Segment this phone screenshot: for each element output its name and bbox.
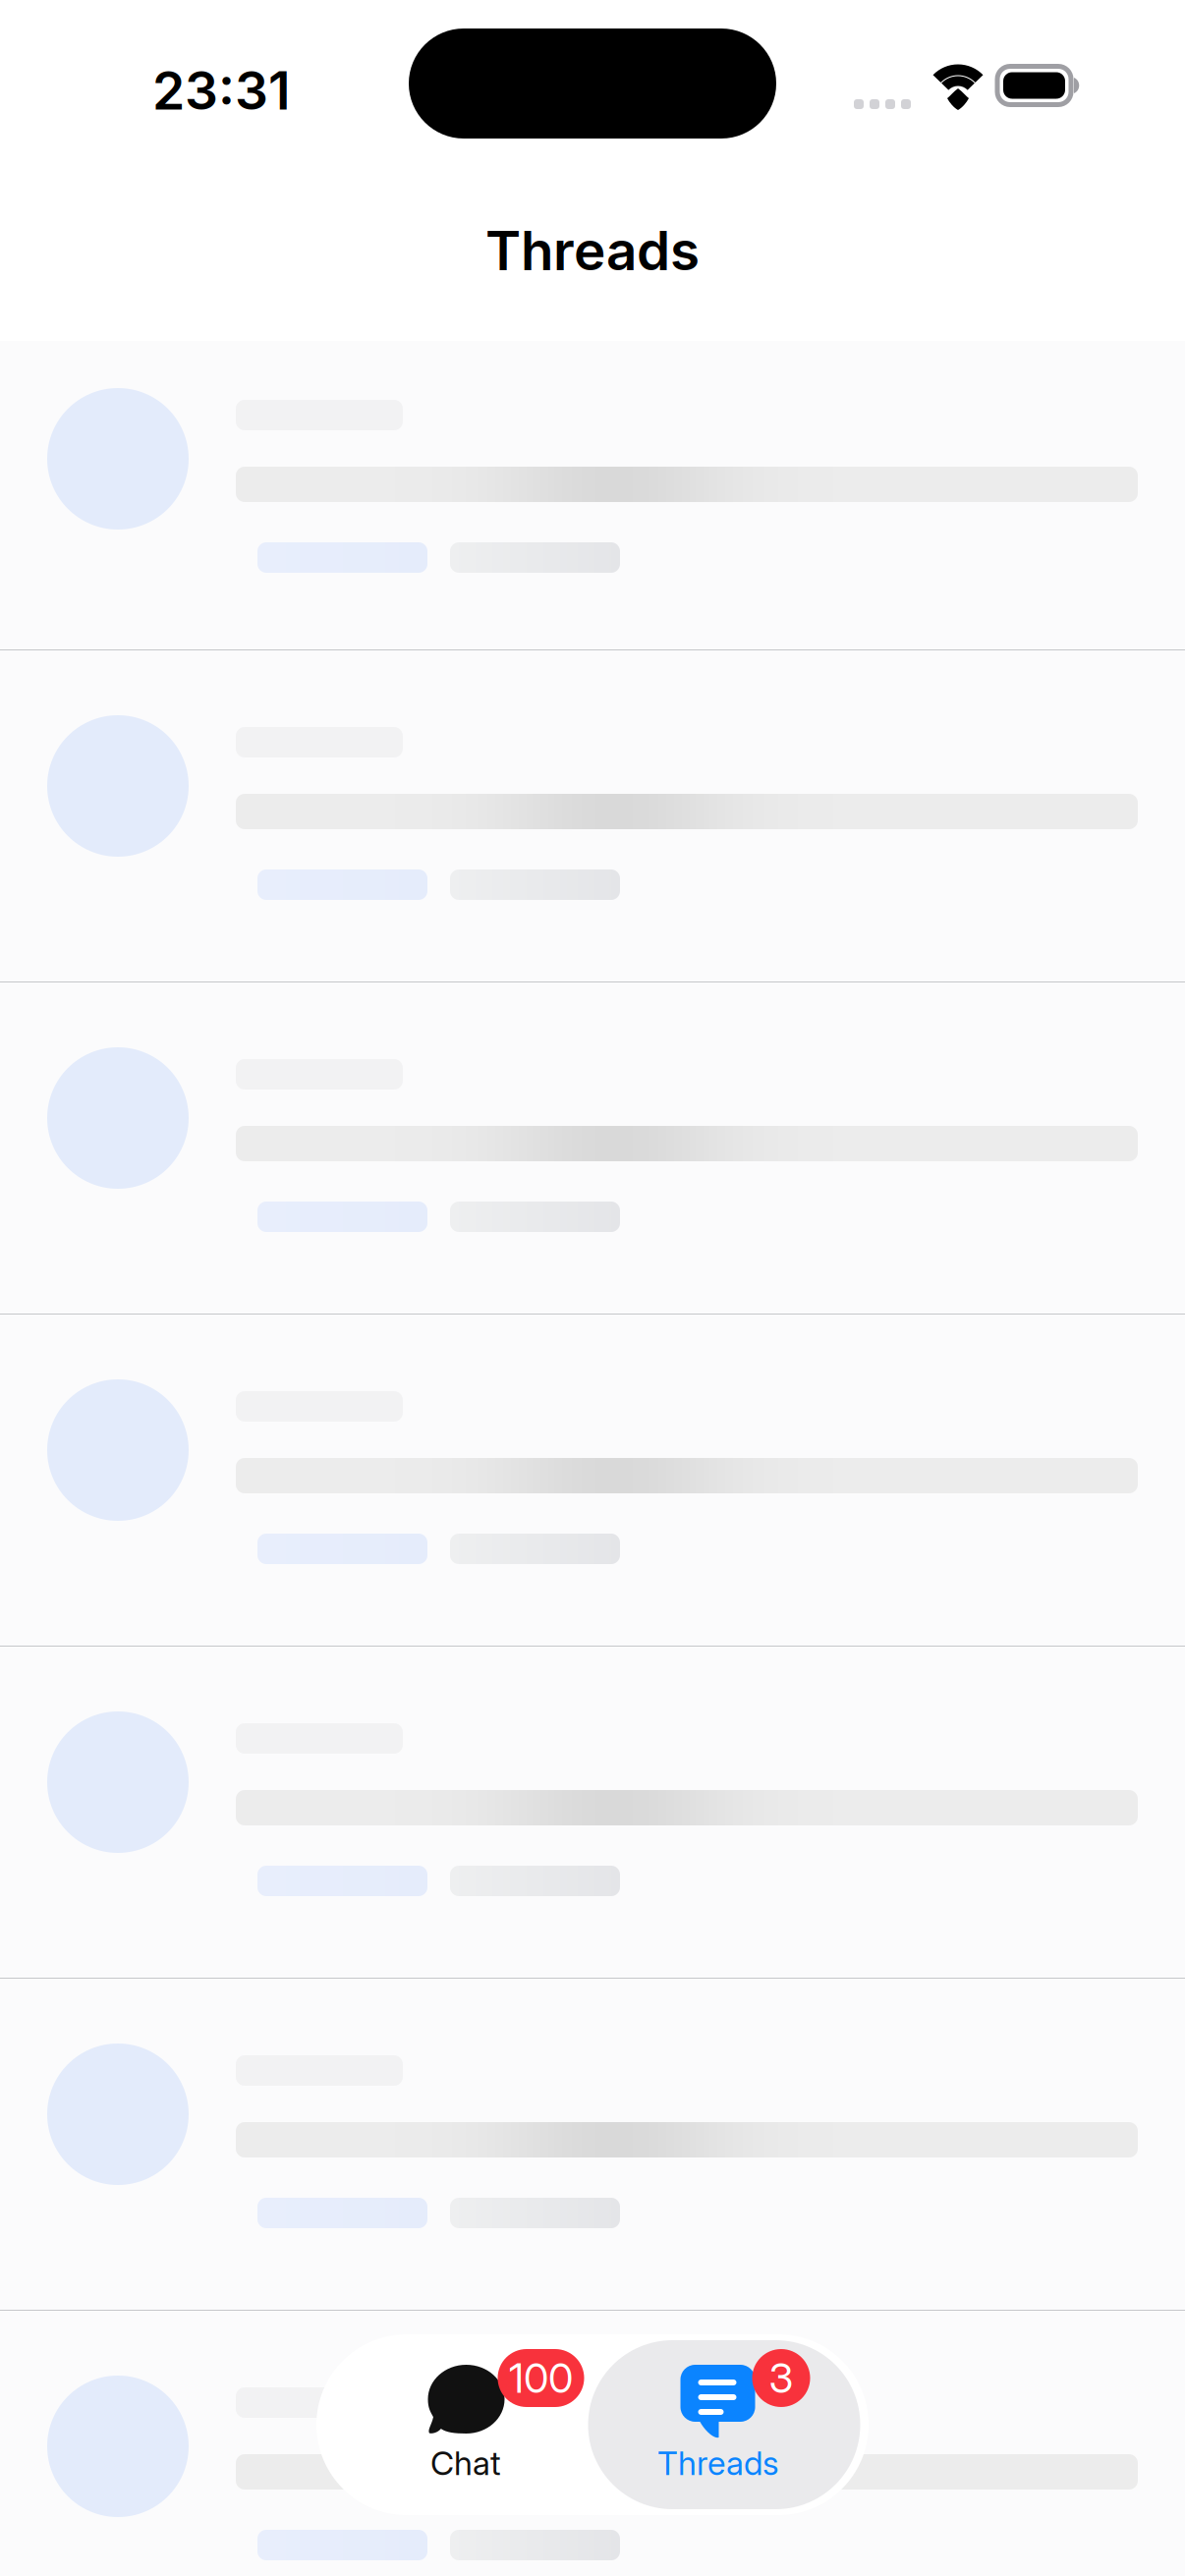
staticText: Threads	[657, 2443, 779, 2483]
button[interactable]: 100	[316, 2340, 588, 2509]
staticText: Chat	[430, 2443, 501, 2483]
button[interactable]: 3	[588, 2340, 860, 2509]
staticText: Threads	[485, 218, 700, 283]
staticText: 23:31	[152, 59, 291, 122]
staticText: 3	[769, 2353, 793, 2403]
staticText: 100	[509, 2353, 573, 2403]
